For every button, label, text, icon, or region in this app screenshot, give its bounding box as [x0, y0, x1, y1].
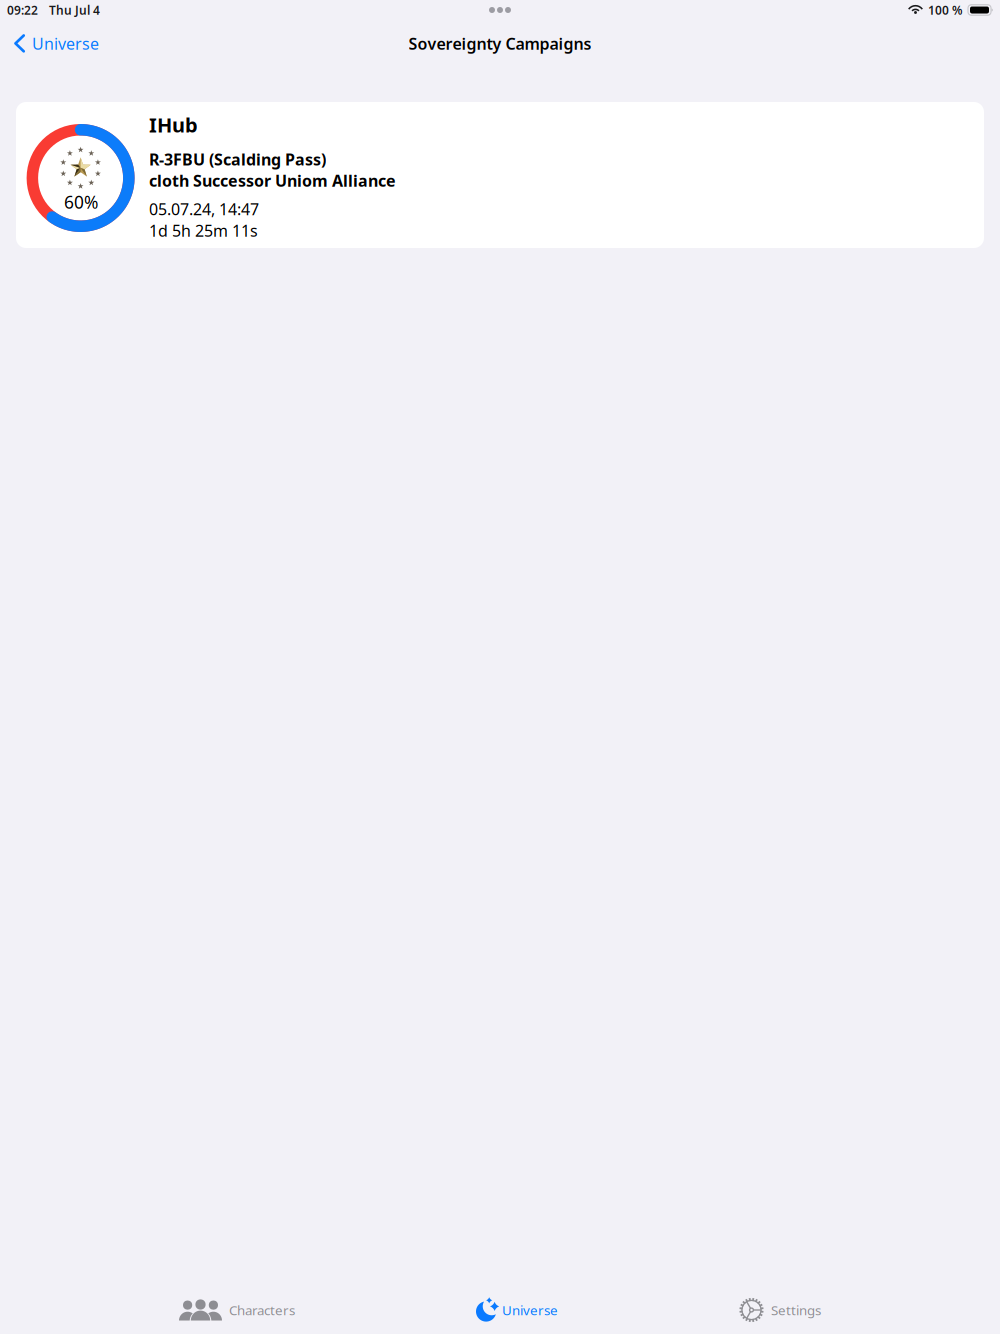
- staticText: Sovereignty Campaigns: [408, 33, 591, 54]
- staticText: Characters: [229, 1301, 295, 1319]
- button[interactable]: Settings: [739, 1292, 821, 1327]
- staticText: 60%: [64, 190, 98, 213]
- button[interactable]: Universe: [476, 1293, 558, 1327]
- button[interactable]: 60%: [16, 102, 984, 248]
- staticText: Universe: [502, 1301, 558, 1319]
- button[interactable]: Universe: [0, 27, 109, 60]
- staticText: IHub: [149, 111, 198, 138]
- staticText: 100 %: [928, 2, 963, 18]
- staticText: 05.07.24, 14:47: [149, 198, 259, 220]
- staticText: Universe: [32, 33, 99, 54]
- staticText: Thu Jul 4: [49, 2, 100, 18]
- staticText: R-3FBU (Scalding Pass): [149, 149, 326, 170]
- button[interactable]: Characters: [179, 1294, 295, 1325]
- staticText: Settings: [771, 1301, 821, 1319]
- staticText: 1d 5h 25m 11s: [149, 220, 258, 241]
- staticText: cloth Successor Uniom Alliance: [149, 170, 396, 191]
- staticText: 09:22: [7, 2, 38, 18]
